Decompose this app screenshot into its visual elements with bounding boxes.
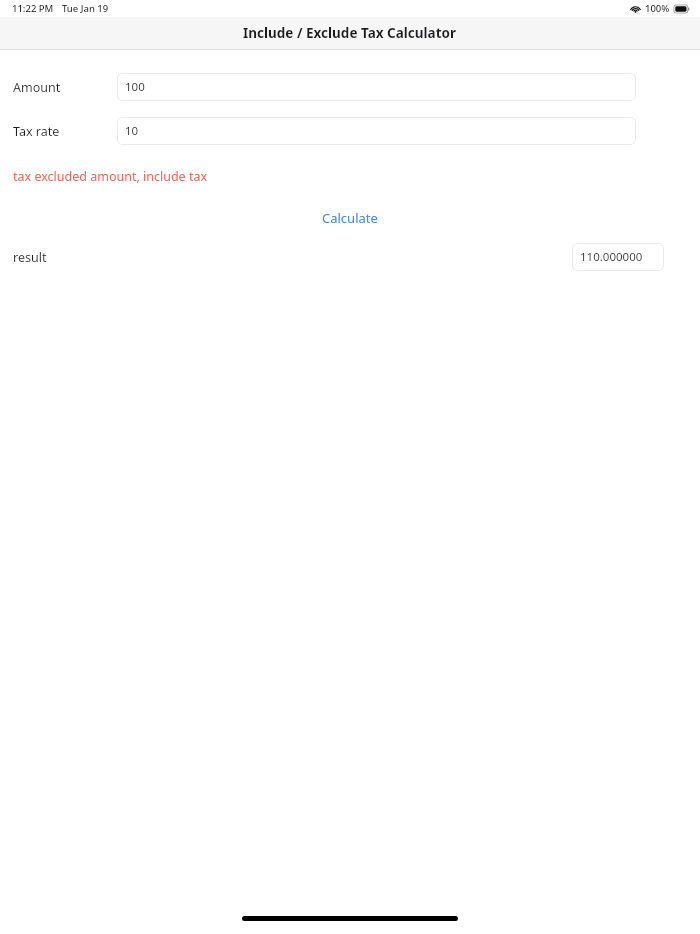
staticText: 100: [125, 79, 145, 95]
button[interactable]: 100: [117, 73, 636, 101]
staticText: 10: [125, 123, 139, 139]
staticText: Include / Exclude Tax Calculator: [243, 24, 457, 42]
staticText: Tue Jan 19: [62, 2, 109, 15]
button[interactable]: 110.000000: [572, 243, 664, 271]
staticText: tax excluded amount, include tax: [13, 168, 208, 185]
staticText: Calculate: [322, 209, 378, 227]
staticText: 11:22 PM: [12, 2, 54, 15]
staticText: Amount: [13, 79, 61, 96]
button[interactable]: 10: [117, 117, 636, 145]
staticText: 110.000000: [580, 249, 643, 265]
staticText: 100%: [645, 2, 670, 15]
staticText: Tax rate: [13, 123, 60, 140]
staticText: result: [13, 249, 47, 266]
button[interactable]: Calculate: [312, 207, 388, 229]
